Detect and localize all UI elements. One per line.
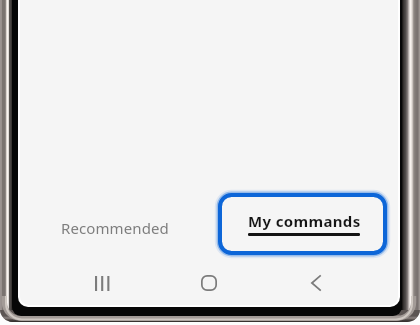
button[interactable]: Recent apps xyxy=(78,263,126,303)
button[interactable]: Home xyxy=(185,263,233,303)
staticText: My commands xyxy=(248,211,361,231)
button[interactable]: My commands xyxy=(218,193,387,255)
staticText: Recommended xyxy=(61,218,169,238)
button[interactable]: Recommended xyxy=(49,212,181,244)
button[interactable]: Back xyxy=(292,263,340,303)
